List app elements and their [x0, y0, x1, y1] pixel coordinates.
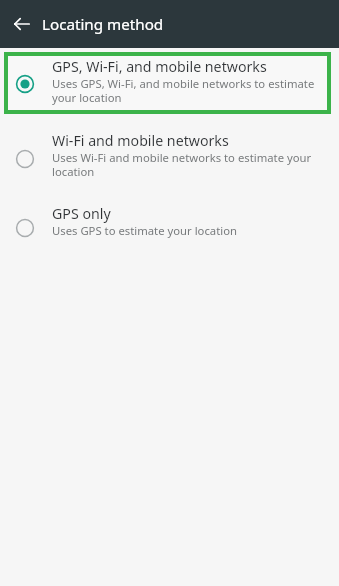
staticText: GPS, Wi-Fi, and mobile networks — [52, 59, 267, 76]
button[interactable]: Back — [8, 10, 36, 38]
button[interactable]: Wi-Fi and mobile networks — [0, 122, 339, 190]
button[interactable]: GPS, Wi-Fi, and mobile networks — [0, 48, 339, 118]
staticText: GPS only — [52, 206, 111, 223]
staticText: Locating method — [42, 14, 164, 35]
staticText: Uses GPS, Wi-Fi, and mobile networks to … — [52, 77, 315, 105]
staticText: Wi-Fi and mobile networks — [52, 133, 229, 150]
staticText: Uses Wi-Fi and mobile networks to estima… — [52, 151, 312, 179]
button[interactable]: GPS only — [0, 196, 339, 252]
staticText: Uses GPS to estimate your location — [52, 224, 237, 238]
